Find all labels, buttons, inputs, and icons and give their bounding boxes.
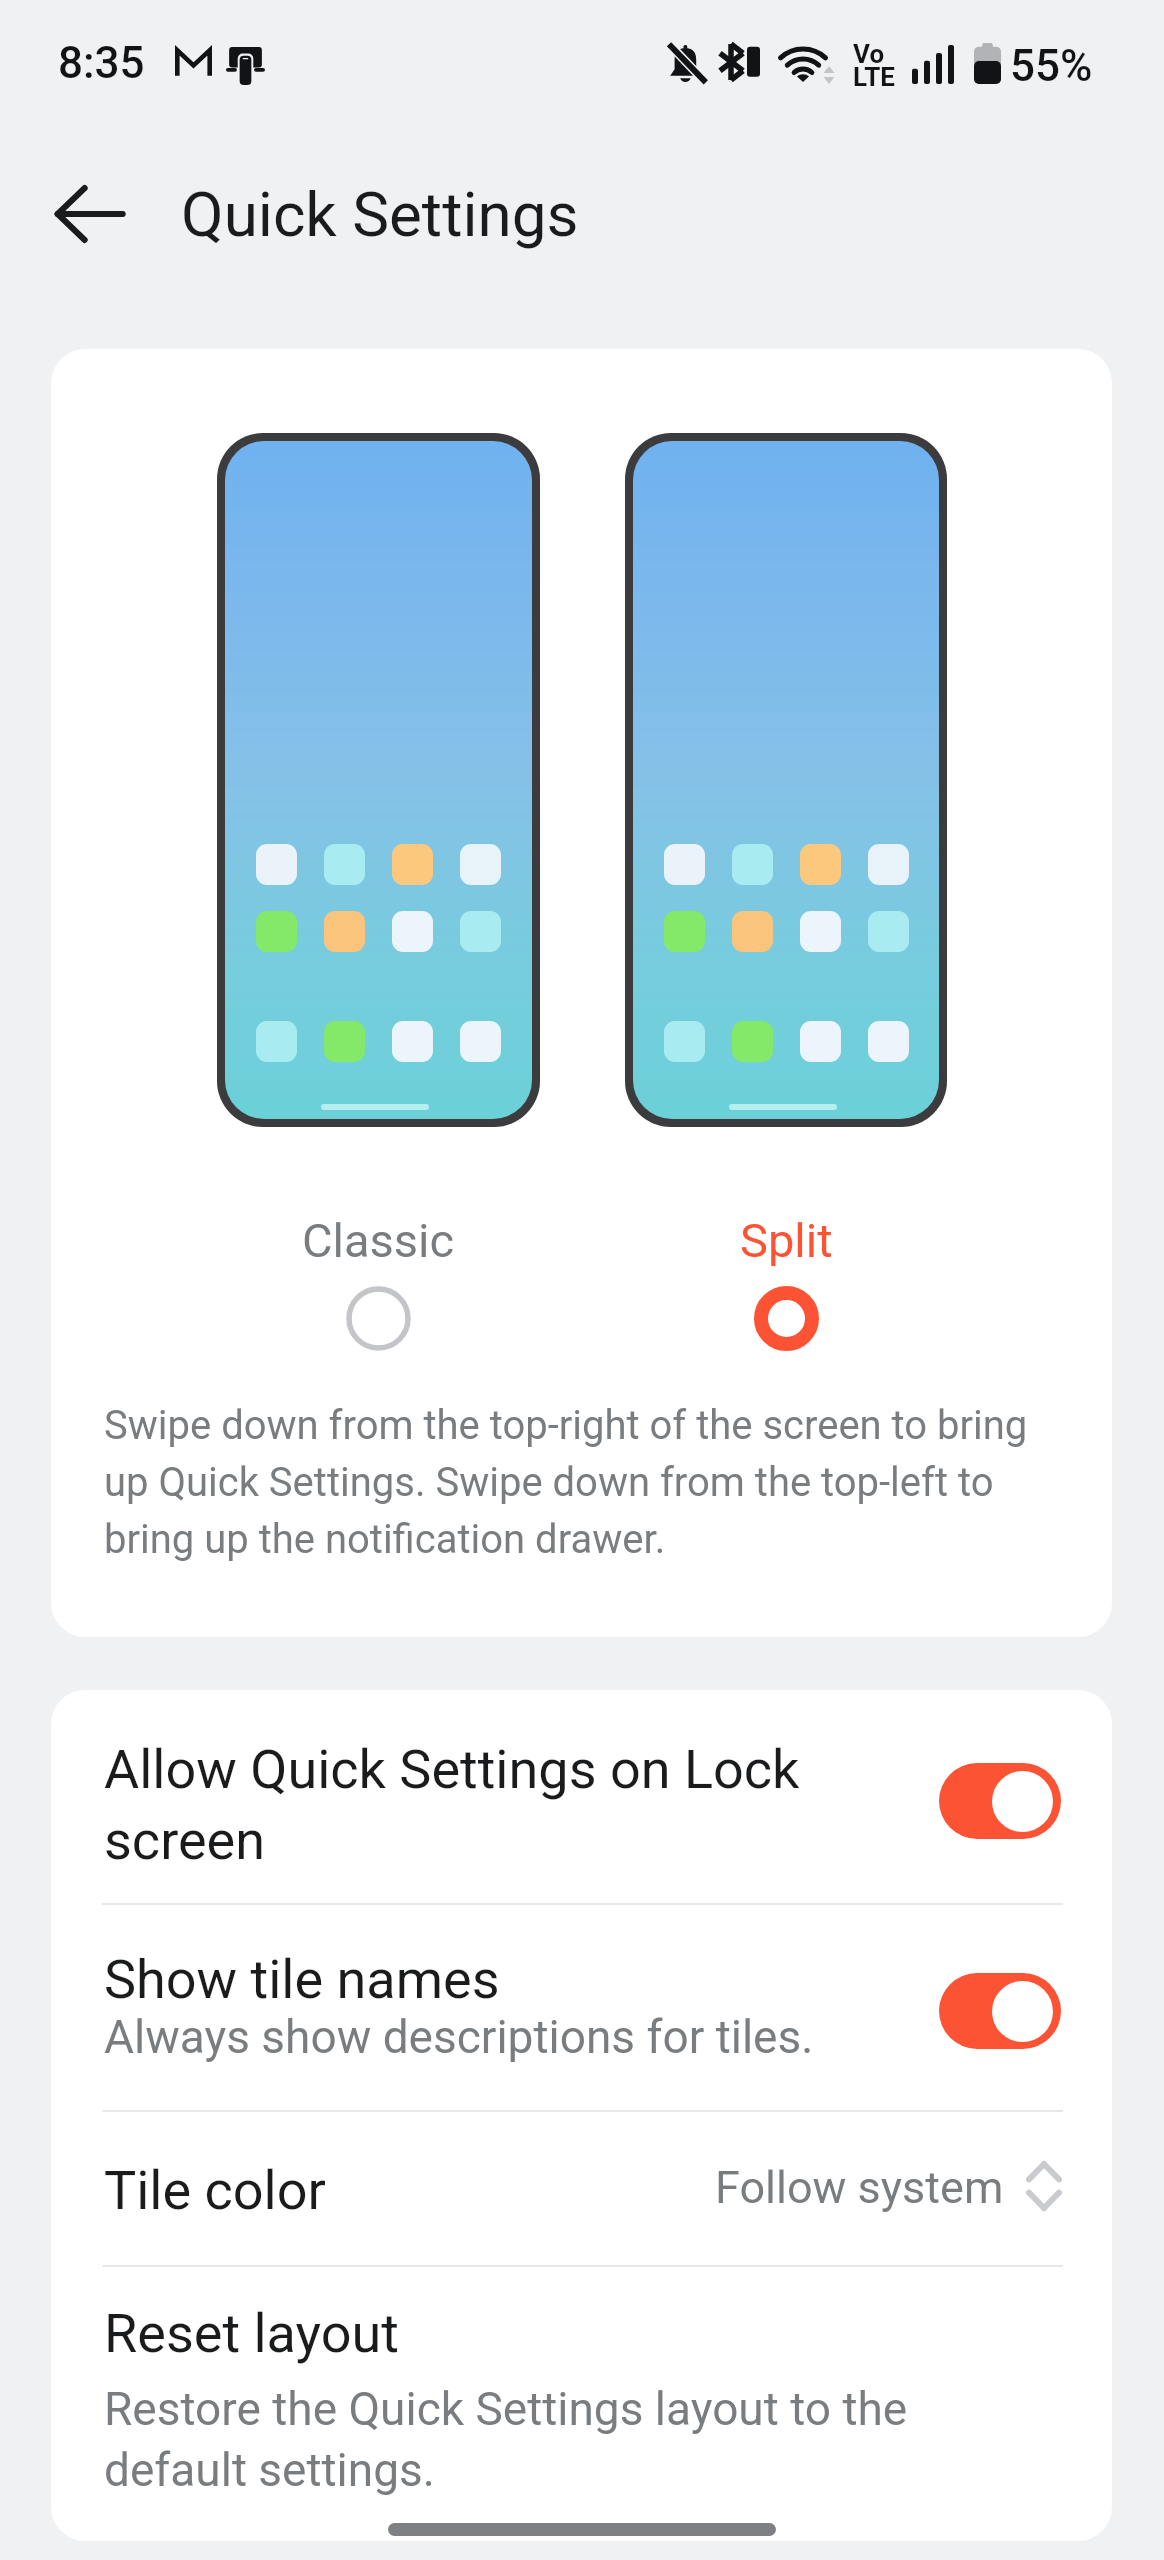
staticText: Restore the Quick Settings layout to the… — [104, 2377, 934, 2499]
staticText: Vo — [853, 39, 885, 69]
button[interactable]: Split — [625, 1213, 948, 1373]
staticText: Follow system — [715, 2161, 1004, 2214]
staticText: Reset layout — [104, 2302, 399, 2365]
staticText: Allow Quick Settings on Lock screen — [104, 1732, 874, 1874]
staticText: Tile color — [104, 2159, 326, 2222]
staticText: Quick Settings — [181, 178, 579, 251]
button[interactable]: Toggle setting — [939, 1973, 1061, 2049]
staticText: Show tile names — [104, 1948, 500, 2011]
button[interactable]: Classic — [217, 1213, 540, 1373]
staticText: 8:35 — [58, 37, 145, 89]
staticText: Always show descriptions for tiles. — [104, 2010, 814, 2064]
staticText: 55% — [1010, 40, 1093, 92]
staticText: LTE — [853, 62, 895, 92]
button[interactable]: Reset layout — [51, 2267, 1112, 2541]
button[interactable]: Tile color — [51, 2112, 1112, 2265]
staticText: Split — [740, 1213, 833, 1268]
staticText: Classic — [302, 1213, 455, 1268]
button[interactable]: Show tile names — [51, 1905, 1112, 2110]
staticText: Swipe down from the top-right of the scr… — [104, 1394, 1060, 1565]
button[interactable]: Allow Quick Settings on Lock screen — [51, 1690, 1112, 1903]
button[interactable]: Back — [42, 166, 138, 262]
button[interactable]: Toggle setting — [939, 1763, 1061, 1839]
